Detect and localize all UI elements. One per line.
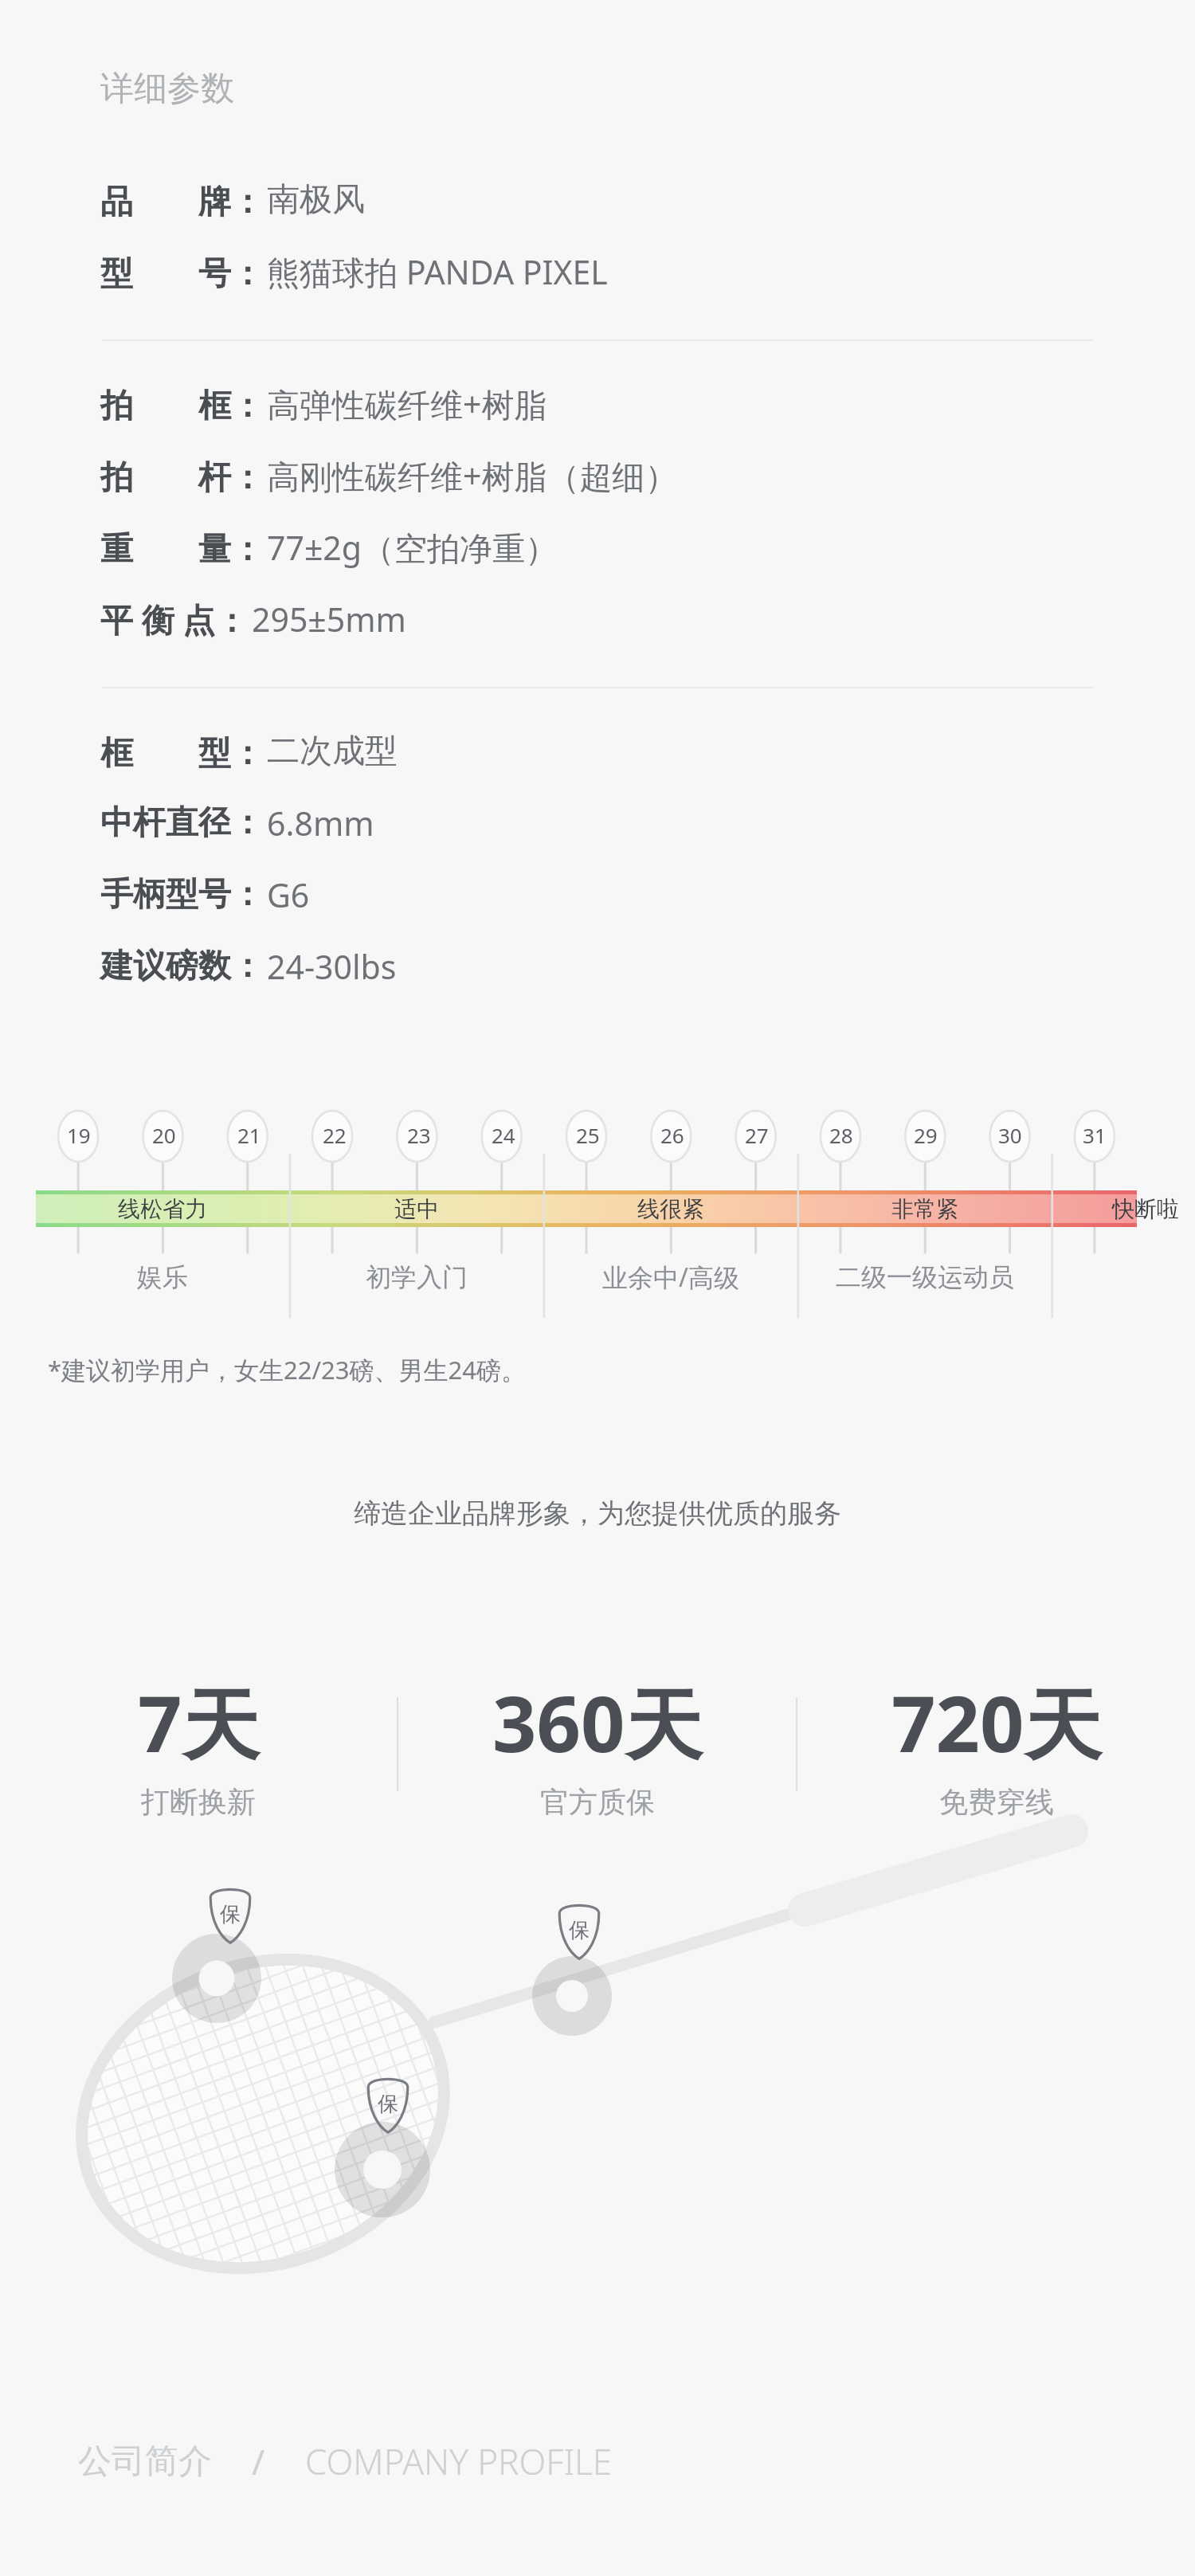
button[interactable]: 7天 xyxy=(0,1669,397,1820)
staticText: 线松省力 xyxy=(118,1195,207,1223)
staticText: 娱乐 xyxy=(137,1261,188,1293)
staticText: 720天 xyxy=(891,1669,1102,1774)
staticText: 高刚性碳纤维+树脂（超细） xyxy=(267,453,678,498)
staticText: 22 xyxy=(323,1121,347,1149)
staticText: 23 xyxy=(407,1121,431,1149)
staticText: 19 xyxy=(67,1121,91,1149)
staticText: 适中 xyxy=(394,1195,439,1223)
staticText: 28 xyxy=(829,1121,853,1149)
staticText: 打断换新 xyxy=(141,1784,256,1820)
staticText: 快断啦 xyxy=(1112,1195,1179,1223)
staticText: 线很紧 xyxy=(637,1195,704,1223)
staticText: *建议初学用户，女生22/23磅、男生24磅。 xyxy=(48,1353,527,1386)
staticText: 品 牌： xyxy=(100,178,264,222)
staticText: G6 xyxy=(267,872,310,917)
staticText: 7天 xyxy=(138,1669,260,1774)
staticText: 20 xyxy=(152,1121,176,1149)
staticText: 业余中/高级 xyxy=(602,1260,739,1295)
staticText: 24 xyxy=(492,1121,515,1149)
staticText: 29 xyxy=(914,1121,938,1149)
staticText: 295±5mm xyxy=(252,597,406,641)
staticText: 建议磅数： xyxy=(100,946,264,987)
staticText: 26 xyxy=(660,1121,684,1149)
button[interactable]: 公司简介 xyxy=(78,2410,1195,2512)
staticText: 31 xyxy=(1083,1121,1107,1149)
staticText: 拍 框： xyxy=(100,382,264,426)
staticText: COMPANY PROFILE xyxy=(305,2437,613,2485)
staticText: 南极风 xyxy=(267,179,365,221)
staticText: 6.8mm xyxy=(267,801,374,845)
staticText: 21 xyxy=(237,1121,261,1149)
staticText: 平 衡 点： xyxy=(100,597,249,641)
staticText: 30 xyxy=(998,1121,1022,1149)
staticText: 高弹性碳纤维+树脂 xyxy=(267,382,547,426)
staticText: 360天 xyxy=(492,1669,703,1774)
staticText: 缔造企业品牌形象，为您提供优质的服务 xyxy=(0,1496,1195,1531)
staticText: / xyxy=(252,2437,265,2485)
staticText: 官方质保 xyxy=(540,1784,655,1820)
staticText: 二级一级运动员 xyxy=(836,1261,1014,1293)
staticText: 二次成型 xyxy=(267,731,398,772)
staticText: 中杆直径： xyxy=(100,802,264,844)
staticText: 熊猫球拍 PANDA PIXEL xyxy=(267,249,608,294)
staticText: 初学入门 xyxy=(366,1261,468,1293)
staticText: 27 xyxy=(745,1121,769,1149)
staticText: 详细参数 xyxy=(100,68,234,110)
staticText: 保 xyxy=(220,1901,241,1927)
staticText: 保 xyxy=(378,2091,398,2117)
staticText: 25 xyxy=(576,1121,600,1149)
staticText: 24-30lbs xyxy=(267,944,397,989)
button[interactable]: 360天 xyxy=(398,1669,796,1820)
staticText: 型 号： xyxy=(100,249,264,294)
staticText: 免费穿线 xyxy=(939,1784,1054,1820)
staticText: 拍 杆： xyxy=(100,453,264,498)
button[interactable]: 720天 xyxy=(797,1669,1195,1820)
staticText: 非常紧 xyxy=(891,1195,958,1223)
staticText: 手柄型号： xyxy=(100,874,264,916)
staticText: 77±2g（空拍净重） xyxy=(267,525,558,570)
staticText: 公司简介 xyxy=(78,2441,212,2483)
staticText: 保 xyxy=(569,1917,590,1943)
staticText: 重 量： xyxy=(100,525,264,570)
staticText: 框 型： xyxy=(100,729,264,774)
